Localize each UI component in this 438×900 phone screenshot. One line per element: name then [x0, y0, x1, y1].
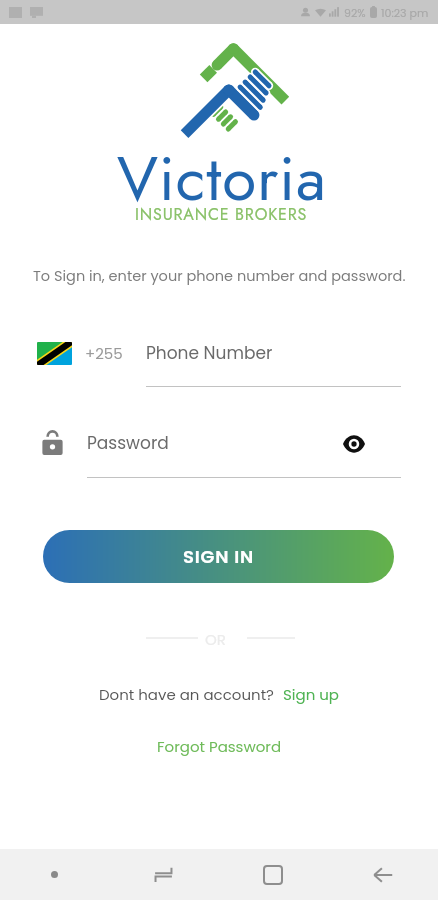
staticText: INSURANCE BROKERS [135, 203, 308, 226]
staticText: Sign up [283, 684, 339, 705]
button[interactable]: Forgot Password [157, 736, 282, 757]
staticText: 10:23 pm [381, 5, 429, 20]
button[interactable]: Show password [337, 430, 371, 458]
staticText: SIGN IN [183, 544, 255, 569]
staticText: Password [87, 431, 169, 455]
staticText: +255 [85, 343, 123, 364]
staticText: Forgot Password [157, 736, 282, 757]
staticText: OR [205, 629, 226, 650]
staticText: Victoria [117, 134, 327, 224]
button[interactable]: Back [328, 849, 438, 900]
button[interactable]: Recents [109, 849, 218, 900]
staticText: To Sign in, enter your phone number and … [33, 266, 406, 286]
button[interactable]: Home [218, 849, 328, 900]
button[interactable]: Sign up [283, 684, 339, 705]
staticText: 92% [344, 5, 366, 20]
button[interactable]: Menu [0, 849, 109, 900]
button[interactable]: SIGN IN [43, 530, 394, 583]
staticText: Dont have an account? [99, 684, 274, 705]
staticText: Phone Number [146, 341, 273, 365]
